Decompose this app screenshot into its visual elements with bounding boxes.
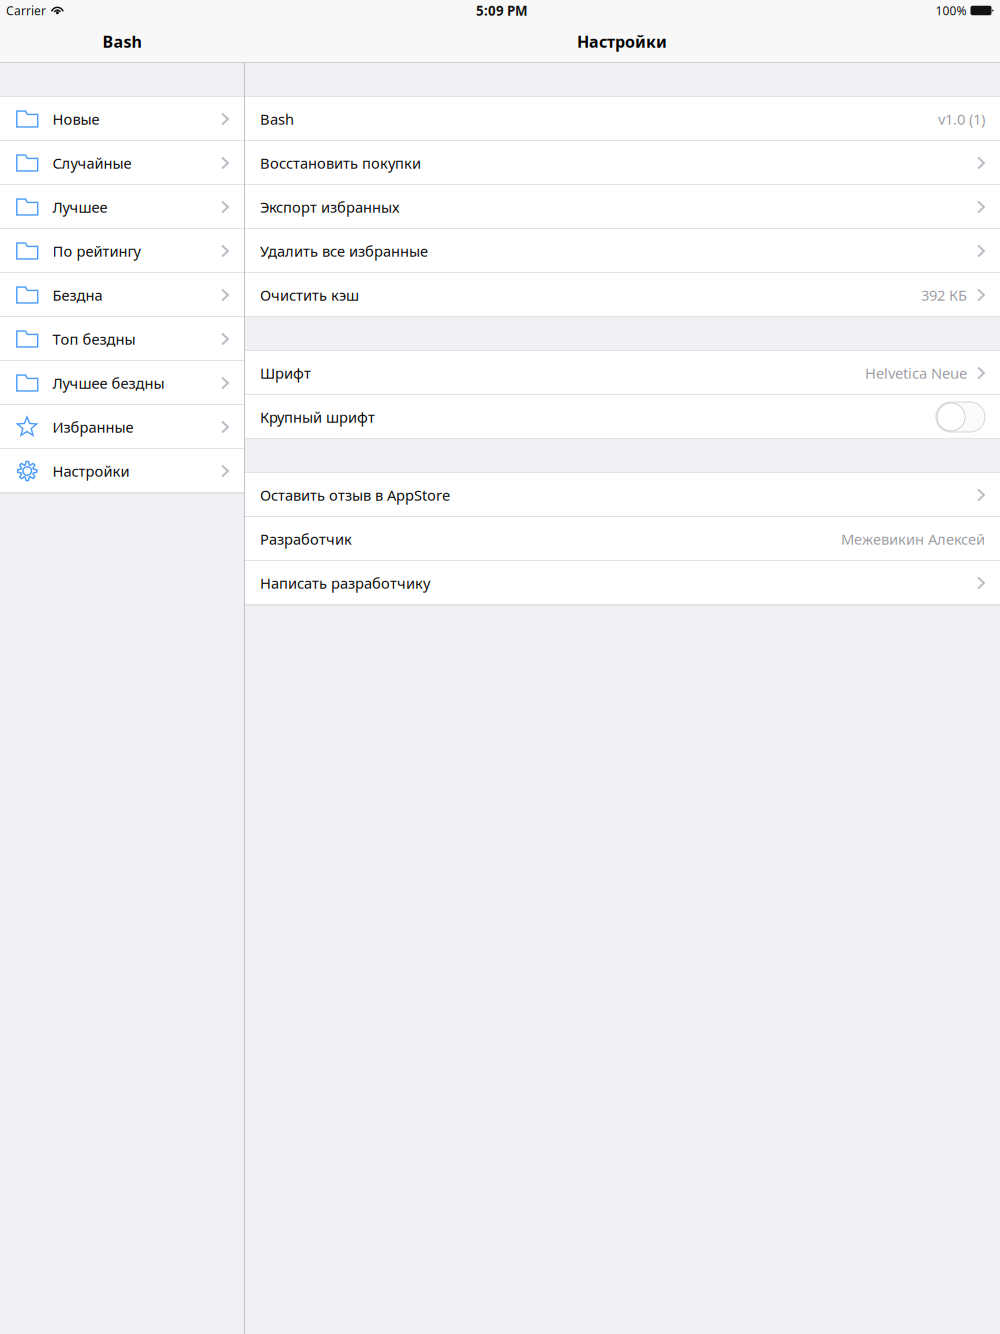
- staticText: 100%: [935, 2, 966, 18]
- staticText: Крупный шрифт: [260, 407, 375, 427]
- button[interactable]: Случайные: [0, 141, 244, 185]
- button[interactable]: Лучшее бездны: [0, 361, 244, 405]
- button[interactable]: Экспорт избранных: [245, 185, 1000, 229]
- staticText: Топ бездны: [52, 329, 135, 349]
- staticText: 392 КБ: [921, 285, 967, 305]
- staticText: Шрифт: [260, 363, 311, 383]
- staticText: Удалить все избранные: [260, 241, 428, 261]
- staticText: Carrier: [6, 2, 46, 18]
- staticText: Helvetica Neue: [865, 363, 967, 383]
- staticText: Лучшее бездны: [52, 373, 164, 393]
- button[interactable]: Шрифт: [245, 351, 1000, 395]
- button[interactable]: Настройки: [0, 449, 244, 493]
- button[interactable]: Написать разработчику: [245, 561, 1000, 605]
- staticText: Разработчик: [260, 529, 352, 549]
- staticText: Лучшее: [52, 197, 107, 217]
- staticText: Избранные: [52, 417, 133, 437]
- staticText: Оставить отзыв в AppStore: [260, 485, 450, 505]
- button[interactable]: Новые: [0, 97, 244, 141]
- button[interactable]: Bash: [245, 97, 1000, 141]
- button[interactable]: Избранные: [0, 405, 244, 449]
- staticText: Настройки: [577, 31, 667, 52]
- staticText: v1.0 (1): [938, 109, 985, 129]
- button[interactable]: Очистить кэш: [245, 273, 1000, 317]
- staticText: 5:09 PM: [476, 2, 528, 19]
- button[interactable]: По рейтингу: [0, 229, 244, 273]
- button[interactable]: Восстановить покупки: [245, 141, 1000, 185]
- staticText: Написать разработчику: [260, 573, 430, 593]
- staticText: По рейтингу: [52, 241, 140, 261]
- staticText: Восстановить покупки: [260, 153, 421, 173]
- button[interactable]: Оставить отзыв в AppStore: [245, 473, 1000, 517]
- button[interactable]: Топ бездны: [0, 317, 244, 361]
- button[interactable]: Удалить все избранные: [245, 229, 1000, 273]
- staticText: Межевикин Алексей: [841, 529, 985, 549]
- button[interactable]: Разработчик: [245, 517, 1000, 561]
- staticText: Bash: [102, 31, 141, 52]
- button[interactable]: Лучшее: [0, 185, 244, 229]
- staticText: Экспорт избранных: [260, 197, 399, 217]
- button[interactable]: Бездна: [0, 273, 244, 317]
- staticText: Очистить кэш: [260, 285, 359, 305]
- staticText: Настройки: [52, 461, 129, 481]
- button[interactable]: Крупный шрифт: [245, 395, 1000, 439]
- staticText: Bash: [260, 109, 294, 129]
- staticText: Бездна: [52, 285, 102, 305]
- staticText: Случайные: [52, 153, 131, 173]
- staticText: Новые: [52, 109, 99, 129]
